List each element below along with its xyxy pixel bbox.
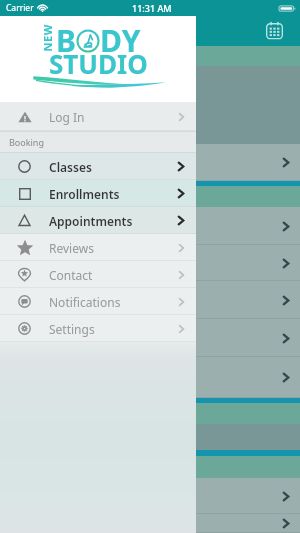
staticText: NEW: [39, 23, 54, 51]
button[interactable]: Calendar: [260, 16, 288, 44]
button[interactable]: Notifications: [0, 288, 196, 315]
button[interactable]: [0, 319, 300, 357]
button[interactable]: Reviews: [0, 234, 196, 261]
button[interactable]: Settings: [0, 315, 196, 342]
staticText: Booking: [9, 136, 44, 148]
button[interactable]: [0, 245, 300, 281]
button[interactable]: Classes: [0, 153, 196, 180]
staticText: Enrollments: [49, 186, 120, 202]
button[interactable]: [0, 514, 300, 533]
button[interactable]: [0, 144, 300, 181]
staticText: Settings: [49, 321, 95, 337]
button[interactable]: [0, 207, 300, 245]
staticText: 11:31 AM: [132, 2, 172, 14]
staticText: Appointments: [49, 213, 133, 229]
staticText: Contact: [49, 267, 93, 283]
button[interactable]: Appointments: [0, 207, 196, 234]
button[interactable]: Log In: [0, 102, 196, 131]
staticText: B: [56, 20, 76, 61]
button[interactable]: [0, 478, 300, 514]
staticText: Carrier: [6, 2, 34, 14]
staticText: Log In: [49, 109, 85, 125]
staticText: Classes: [49, 159, 92, 175]
staticText: STUDIO: [49, 46, 148, 81]
button[interactable]: Enrollments: [0, 180, 196, 207]
staticText: Reviews: [49, 240, 94, 256]
button[interactable]: [0, 281, 300, 319]
staticText: DY: [100, 20, 141, 61]
button[interactable]: [0, 357, 300, 398]
staticText: Notifications: [49, 294, 121, 310]
button[interactable]: Contact: [0, 261, 196, 288]
